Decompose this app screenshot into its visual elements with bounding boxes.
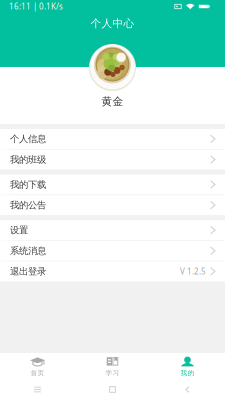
staticText: 我的公告 (10, 199, 46, 211)
button[interactable]: Recents (0, 382, 75, 396)
button[interactable]: 我的公告 (0, 195, 225, 215)
button[interactable]: 首页 (0, 353, 75, 379)
button[interactable]: 我的 (150, 353, 225, 379)
staticText: 设置 (10, 224, 28, 236)
staticText: 系统消息 (10, 245, 46, 257)
button[interactable]: 设置 (0, 220, 225, 240)
staticText: 个人信息 (10, 133, 46, 145)
button[interactable]: 我的班级 (0, 150, 225, 170)
button[interactable]: Home (75, 382, 150, 396)
button[interactable]: 学习 (75, 353, 150, 379)
button[interactable]: 个人信息 (0, 129, 225, 149)
staticText: 黄金 (101, 95, 123, 108)
button[interactable]: 我的下载 (0, 175, 225, 195)
staticText: 我的 (180, 369, 194, 377)
staticText: 我的下载 (10, 179, 46, 190)
staticText: 首页 (30, 369, 44, 377)
staticText: 个人中心 (90, 17, 134, 30)
staticText: V 1.2.5 (180, 266, 206, 277)
button[interactable]: 退出登录 (0, 261, 225, 281)
staticText: 退出登录 (10, 266, 46, 277)
button[interactable]: 系统消息 (0, 241, 225, 261)
staticText: 我的班级 (10, 154, 46, 165)
staticText: 16:11 | 0.1K/s (9, 1, 63, 12)
button[interactable]: Back (150, 382, 225, 396)
staticText: 学习 (105, 369, 119, 377)
